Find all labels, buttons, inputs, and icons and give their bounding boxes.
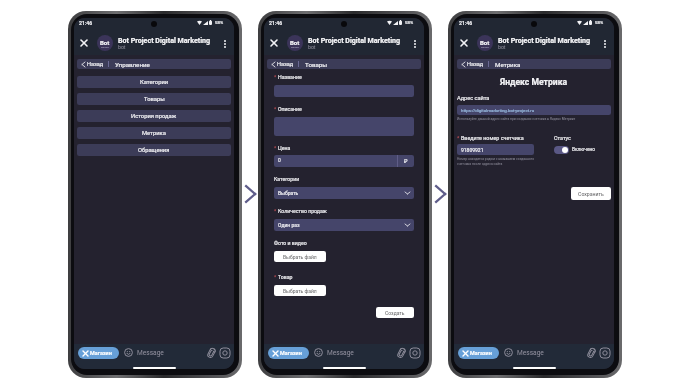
staticText: Адрес сайта [457,95,490,102]
staticText: Назад [277,61,294,67]
staticText: Bot Project Digital Marketing [118,36,211,44]
button[interactable]: Close [77,36,91,50]
staticText: Сохранить [578,191,604,197]
staticText: https://digitalmarketing.bot-project.ru [461,108,535,113]
staticText: bot [118,44,126,50]
staticText: Bot Project Digital Marketing [498,36,591,44]
button[interactable]: Товары [77,93,231,105]
button[interactable]: Один раз [274,219,414,231]
button[interactable]: Emoji [314,348,323,357]
staticText: Bot [100,39,110,46]
staticText: Название [278,74,302,80]
button[interactable]: https://digitalmarketing.bot-project.ru [457,105,611,115]
staticText: 21:46 [459,20,473,26]
staticText: bot [308,44,316,50]
staticText: * [274,106,277,112]
staticText: Bot [480,39,490,46]
staticText: Товар [278,274,293,280]
staticText: * [274,74,277,80]
staticText: История продаж [131,113,177,120]
button[interactable]: More options [599,38,610,49]
staticText: Товары [305,61,328,68]
button[interactable]: Camera [219,347,230,358]
staticText: Введите номер счетчика [461,135,524,141]
staticText: * [274,208,277,214]
staticText: Выбрать файл [283,288,317,294]
staticText: Магазин [280,350,302,356]
staticText: 21:46 [269,20,283,26]
button[interactable]: Выбрать файл [274,285,326,296]
staticText: 58% [215,20,224,25]
button[interactable]: Обращения [77,144,231,156]
button[interactable]: Магазин [268,347,309,359]
button[interactable]: Метрика [77,127,231,139]
button[interactable]: Attach file [206,347,217,358]
button[interactable]: 91809921 [457,144,534,155]
staticText: Товары [144,96,165,103]
staticText: Яндекс Метрика [500,77,568,87]
staticText: Цена [278,145,291,151]
button[interactable]: Close [457,36,471,50]
button[interactable]: Включено [554,146,595,154]
staticText: ₽ [404,158,408,164]
button[interactable]: Camera [409,347,420,358]
staticText: Управление [115,61,150,68]
staticText: PROJECT [291,46,300,48]
staticText: Магазин [470,350,492,356]
staticText: Message [327,349,396,357]
staticText: * [457,135,460,141]
button[interactable]: Категории [77,76,231,88]
button[interactable]: Сохранить [571,187,611,200]
staticText: Message [137,349,206,357]
button[interactable]: Создать [376,307,414,318]
staticText: PROJECT [101,46,110,48]
staticText: bot [498,44,506,50]
button[interactable]: More options [219,38,230,49]
staticText: Категории [274,176,300,182]
staticText: Метрика [495,61,521,68]
staticText: Категории [140,79,169,86]
staticText: Фото и видео [274,240,307,246]
staticText: Назад [87,61,104,67]
button[interactable]: Camera [599,347,610,358]
button[interactable]: Close [267,36,281,50]
button[interactable]: Назад [77,59,108,69]
staticText: * [274,274,277,280]
staticText: Выбрать [278,190,405,196]
staticText: 0 [278,158,281,164]
staticText: Метрика [142,130,166,137]
staticText: 58% [595,20,604,25]
button[interactable]: Выбрать [274,187,414,199]
staticText: * [274,145,277,151]
staticText: Используйте данный адрес сайта при созда… [457,117,576,121]
staticText: PROJECT [481,46,490,48]
button[interactable]: More options [409,38,420,49]
button[interactable]: Attach file [396,347,407,358]
staticText: Описание [278,106,302,112]
staticText: Количество продаж [278,208,327,214]
staticText: Один раз [278,222,405,228]
staticText: Bot Project Digital Marketing [308,36,401,44]
staticText: Создать [385,310,405,316]
button[interactable]: Назад [267,59,298,69]
button[interactable]: Emoji [124,348,133,357]
staticText: Номер находится рядом с названием создан… [457,157,537,166]
staticText: Message [517,349,586,357]
staticText: Магазин [90,350,112,356]
staticText: Выбрать файл [283,254,317,260]
staticText: 91809921 [461,147,484,153]
staticText: 21:46 [79,20,93,26]
staticText: Назад [467,61,484,67]
button[interactable]: Emoji [504,348,513,357]
button[interactable]: История продаж [77,110,231,122]
staticText: 58% [405,20,414,25]
button[interactable]: Attach file [586,347,597,358]
staticText: Включено [572,147,595,153]
button[interactable]: Назад [457,59,488,69]
button[interactable]: Выбрать файл [274,251,326,262]
button[interactable]: Магазин [78,347,119,359]
staticText: Обращения [138,147,170,154]
button[interactable]: Магазин [458,347,499,359]
